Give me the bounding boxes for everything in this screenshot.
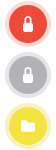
button[interactable]: Unlocked	[5, 52, 51, 98]
button[interactable]: Folder	[5, 103, 51, 149]
button[interactable]: Locked	[5, 1, 51, 47]
